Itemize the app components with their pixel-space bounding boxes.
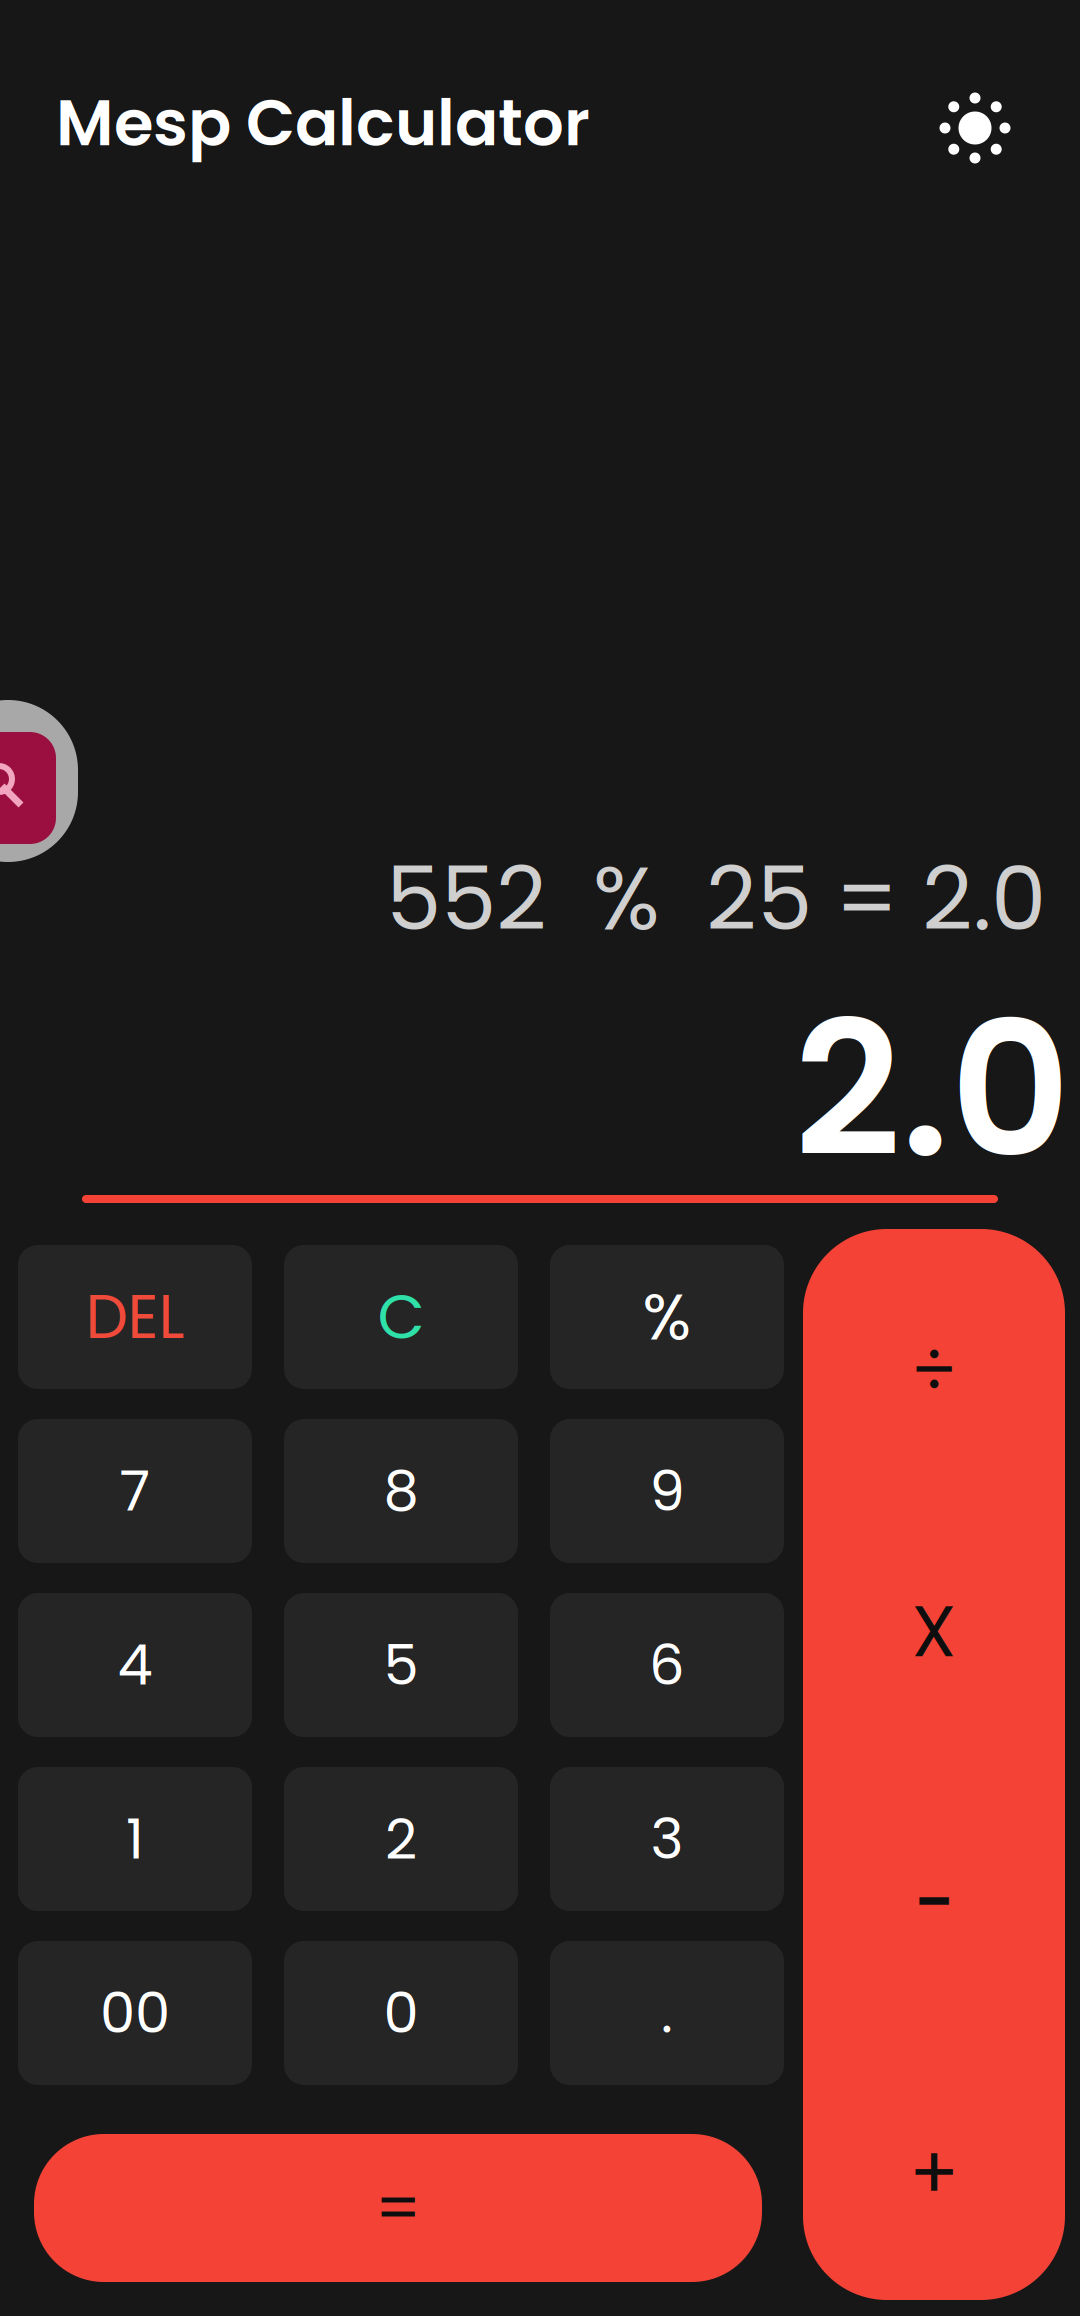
- staticText: 4: [117, 1626, 152, 1704]
- staticText: DEL: [85, 1275, 184, 1359]
- staticText: 2: [385, 1800, 417, 1878]
- staticText: ÷: [911, 1321, 957, 1419]
- staticText: 00: [100, 1974, 170, 2052]
- staticText: +: [909, 2122, 959, 2224]
- staticText: 0: [383, 1974, 418, 2052]
- staticText: 3: [650, 1800, 683, 1878]
- staticText: –: [915, 1864, 952, 1938]
- staticText: 9: [649, 1452, 684, 1530]
- button[interactable]: 7: [18, 1419, 252, 1563]
- staticText: 1: [126, 1800, 144, 1878]
- button[interactable]: Add: [803, 2031, 1065, 2298]
- staticText: 8: [383, 1452, 418, 1530]
- staticText: 2.0: [794, 959, 1071, 1220]
- staticText: 5: [383, 1626, 418, 1704]
- button[interactable]: C: [284, 1245, 518, 1389]
- button[interactable]: Multiply: [803, 1497, 1065, 1764]
- button[interactable]: 00: [18, 1941, 252, 2085]
- button[interactable]: =: [34, 2134, 762, 2282]
- button[interactable]: Divide: [803, 1230, 1065, 1497]
- staticText: =: [375, 2163, 421, 2253]
- button[interactable]: 9: [550, 1419, 784, 1563]
- button[interactable]: .: [550, 1941, 784, 2085]
- staticText: 552 % 25 = 2.0: [386, 837, 1046, 960]
- button[interactable]: 1: [18, 1767, 252, 1911]
- staticText: %: [642, 1272, 691, 1362]
- button[interactable]: DEL: [18, 1245, 252, 1389]
- button[interactable]: Brightness: [937, 90, 1013, 166]
- staticText: 6: [649, 1626, 685, 1704]
- staticText: Mesp Calculator: [56, 78, 590, 168]
- staticText: X: [911, 1581, 956, 1681]
- button[interactable]: 2: [284, 1767, 518, 1911]
- button[interactable]: 5: [284, 1593, 518, 1737]
- button[interactable]: 6: [550, 1593, 784, 1737]
- button[interactable]: 3: [550, 1767, 784, 1911]
- staticText: 7: [119, 1452, 150, 1530]
- button[interactable]: 0: [284, 1941, 518, 2085]
- staticText: C: [377, 1274, 424, 1360]
- button[interactable]: Subtract: [803, 1764, 1065, 2031]
- staticText: .: [661, 1974, 673, 2052]
- button[interactable]: 8: [284, 1419, 518, 1563]
- button[interactable]: %: [550, 1245, 784, 1389]
- button[interactable]: 4: [18, 1593, 252, 1737]
